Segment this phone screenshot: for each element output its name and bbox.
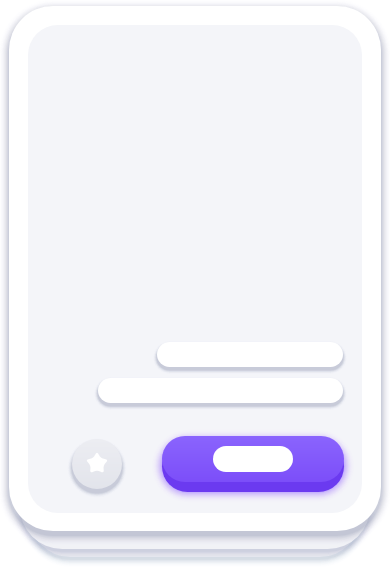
button[interactable]: Primary action [162,436,344,492]
button[interactable]: Favorite [72,439,122,489]
